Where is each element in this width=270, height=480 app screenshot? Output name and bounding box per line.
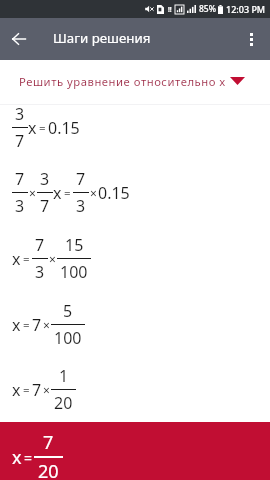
staticText: = bbox=[39, 120, 46, 136]
staticText: x bbox=[12, 248, 21, 270]
staticText: 20 bbox=[54, 392, 73, 414]
staticText: = bbox=[24, 448, 33, 467]
staticText: × bbox=[29, 185, 36, 201]
staticText: 3 bbox=[15, 195, 25, 217]
button[interactable]: Back bbox=[4, 24, 34, 54]
staticText: Решить уравнение относительно x bbox=[19, 74, 226, 89]
staticText: x bbox=[28, 117, 37, 139]
staticText: 3 bbox=[35, 261, 45, 283]
staticText: 100 bbox=[60, 261, 88, 283]
staticText: = bbox=[23, 251, 30, 267]
staticText: 1 bbox=[59, 365, 69, 387]
staticText: 0.15 bbox=[98, 182, 130, 204]
staticText: 7 bbox=[43, 430, 54, 455]
staticText: x bbox=[12, 379, 21, 401]
staticText: 7 bbox=[15, 168, 25, 190]
staticText: x bbox=[12, 314, 21, 336]
staticText: 3 bbox=[40, 168, 50, 190]
staticText: 7 bbox=[32, 379, 42, 401]
staticText: 7 bbox=[32, 314, 42, 336]
staticText: × bbox=[90, 185, 97, 201]
staticText: 0.15 bbox=[48, 117, 80, 139]
staticText: 20 bbox=[38, 459, 59, 480]
staticText: Шаги решения bbox=[53, 29, 151, 47]
staticText: = bbox=[23, 382, 30, 398]
staticText: × bbox=[43, 382, 50, 398]
staticText: 7 bbox=[76, 168, 86, 190]
staticText: 3 bbox=[15, 103, 25, 125]
staticText: 7 bbox=[40, 195, 50, 217]
staticText: = bbox=[23, 317, 30, 333]
staticText: 12:03 PM bbox=[226, 3, 266, 15]
staticText: 85% bbox=[199, 3, 216, 15]
staticText: 7 bbox=[15, 130, 25, 152]
staticText: = bbox=[64, 185, 71, 201]
staticText: 7 bbox=[35, 234, 45, 256]
button[interactable]: More options bbox=[237, 25, 265, 53]
button[interactable]: Решить уравнение относительно x bbox=[0, 60, 270, 102]
staticText: 5 bbox=[63, 300, 73, 322]
staticText: 100 bbox=[54, 327, 82, 349]
staticText: × bbox=[43, 317, 50, 333]
staticText: !! bbox=[168, 5, 172, 14]
staticText: 3 bbox=[76, 195, 86, 217]
staticText: x bbox=[53, 182, 62, 204]
staticText: x bbox=[12, 445, 22, 470]
staticText: 15 bbox=[65, 234, 84, 256]
staticText: × bbox=[49, 251, 56, 267]
